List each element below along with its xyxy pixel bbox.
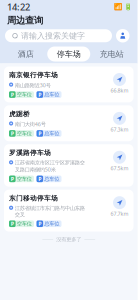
staticText: 总车位 xyxy=(44,130,59,137)
staticText: 67.7km xyxy=(110,210,128,217)
staticText: 14:22 xyxy=(7,1,30,13)
staticText: 南京银行停车场 xyxy=(9,71,58,79)
button[interactable]: 东门移动停车场 xyxy=(4,190,133,232)
staticText: 总车位 xyxy=(44,176,59,182)
staticText: P xyxy=(11,220,14,227)
staticText: 📶 xyxy=(114,3,122,11)
staticText: 南门大街46号 xyxy=(15,121,46,128)
staticText: 请输入搜索关键字 xyxy=(21,31,85,41)
staticText: 东门移动停车场 xyxy=(9,194,58,202)
staticText: 空车位 xyxy=(17,220,32,227)
staticText: 充电站 xyxy=(100,49,124,59)
staticText: P xyxy=(38,220,41,227)
button[interactable]: 酒店 xyxy=(4,46,47,61)
staticText: 南山路附近30号 xyxy=(15,82,51,89)
staticText: 罗溪路停车场 xyxy=(9,149,51,157)
staticText: 🔋 xyxy=(123,3,131,11)
staticText: 67.3km xyxy=(110,126,128,133)
staticText: 67.5km xyxy=(110,165,128,172)
button[interactable]: 停车场 xyxy=(47,46,90,61)
staticText: 66.8km xyxy=(110,87,128,94)
staticText: 空车位 xyxy=(17,130,32,137)
staticText: P xyxy=(38,130,41,137)
staticText: P xyxy=(11,175,14,182)
staticText: P xyxy=(38,175,41,182)
staticText: 停车场 xyxy=(57,49,81,59)
staticText: 江苏省镇江市东门路与中山东路交叉 xyxy=(15,205,85,218)
button[interactable]: 南京银行停车场 xyxy=(4,66,133,102)
button[interactable]: 请输入搜索关键字 xyxy=(5,29,112,42)
staticText: 周边查询 xyxy=(7,15,43,26)
button[interactable]: 充电站 xyxy=(90,46,133,61)
staticText: 酒店 xyxy=(18,49,34,59)
staticText: 空车位 xyxy=(17,91,32,98)
staticText: 没有更多了 xyxy=(56,236,81,243)
staticText: 总车位 xyxy=(44,220,59,227)
staticText: P xyxy=(11,91,14,98)
staticText: P xyxy=(38,91,41,98)
button[interactable]: My location xyxy=(116,29,129,42)
staticText: 空车位 xyxy=(17,176,32,182)
button[interactable]: 虎踞桥 xyxy=(4,105,133,141)
button[interactable]: 罗溪路停车场 xyxy=(4,144,133,187)
staticText: 虎踞桥 xyxy=(9,110,30,118)
staticText: 江苏省南京市区江宁区罗溪路交叉路口南侧约50米 xyxy=(15,159,85,173)
staticText: P xyxy=(11,130,14,137)
staticText: 总车位 xyxy=(44,91,59,98)
